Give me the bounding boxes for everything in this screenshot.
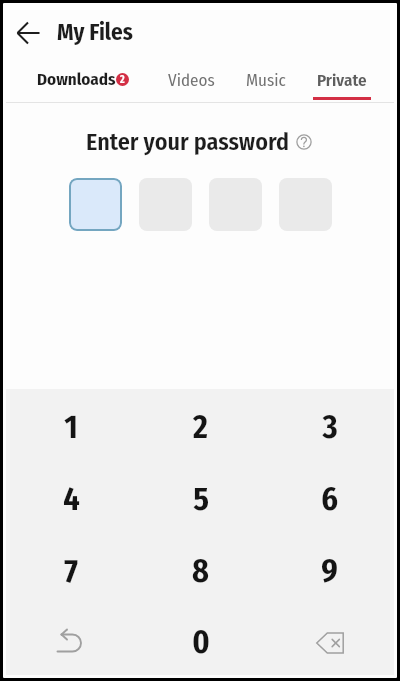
button[interactable]: Private xyxy=(313,65,371,106)
staticText: Videos xyxy=(168,70,215,90)
button[interactable]: 3 xyxy=(265,391,394,463)
staticText: 8 xyxy=(192,552,209,590)
staticText: 9 xyxy=(321,552,338,590)
button[interactable]: 6 xyxy=(265,463,394,535)
staticText: 2 xyxy=(120,74,125,86)
button[interactable]: Backspace xyxy=(265,607,394,677)
button[interactable]: 7 xyxy=(6,535,136,607)
staticText: 5 xyxy=(193,480,209,518)
button[interactable]: Undo xyxy=(6,607,136,677)
staticText: 4 xyxy=(63,480,80,518)
button[interactable]: Help xyxy=(296,134,312,150)
button[interactable]: 4 xyxy=(6,463,136,535)
button[interactable] xyxy=(69,178,122,231)
button[interactable]: 0 xyxy=(136,607,265,677)
button[interactable]: 9 xyxy=(265,535,394,607)
staticText: Music xyxy=(246,70,286,90)
button[interactable]: 8 xyxy=(136,535,265,607)
staticText: 1 xyxy=(64,408,78,446)
button[interactable]: 1 xyxy=(6,391,136,463)
staticText: 0 xyxy=(192,623,210,661)
button[interactable]: Music xyxy=(238,65,293,106)
button[interactable]: Downloads xyxy=(31,62,135,96)
staticText: 3 xyxy=(322,408,338,446)
staticText: 6 xyxy=(321,480,338,518)
button[interactable]: 2 xyxy=(136,391,265,463)
staticText: 7 xyxy=(64,552,78,590)
button[interactable]: 5 xyxy=(136,463,265,535)
button[interactable]: Videos xyxy=(163,65,220,106)
staticText: My Files xyxy=(57,18,133,46)
staticText: Private xyxy=(317,70,367,90)
staticText: Enter your password xyxy=(86,128,290,157)
staticText: Downloads xyxy=(37,69,116,89)
button[interactable]: Back xyxy=(17,21,41,45)
staticText: 2 xyxy=(193,408,208,446)
